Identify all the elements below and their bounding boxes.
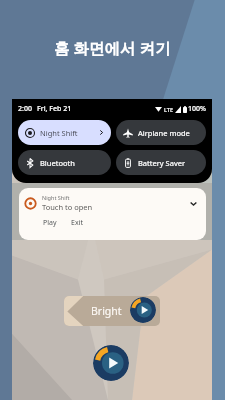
staticText: Play	[43, 218, 57, 228]
button[interactable]: Night Shift	[19, 188, 206, 240]
button[interactable]: Expand	[189, 199, 198, 208]
button[interactable]: Play	[41, 217, 59, 229]
staticText: Exit	[71, 218, 83, 228]
button[interactable]: Play Night Shift	[130, 297, 156, 323]
staticText: 2:00	[18, 104, 32, 114]
button[interactable]: Exit	[69, 217, 85, 229]
button[interactable]: Bluetooth	[18, 150, 111, 175]
button[interactable]: Night Shift	[18, 120, 111, 145]
staticText: Bright	[91, 304, 122, 318]
staticText: Bluetooth	[40, 158, 75, 168]
staticText: Touch to open	[42, 202, 93, 212]
button[interactable]: Airplane mode	[116, 120, 206, 145]
staticText: 100%	[188, 104, 206, 114]
staticText: Airplane mode	[138, 128, 190, 138]
staticText: Fri, Feb 21	[37, 104, 72, 114]
button[interactable]: Bright	[64, 296, 160, 326]
staticText: Battery Saver	[138, 158, 186, 168]
staticText: LTE	[164, 106, 173, 113]
staticText: 홈 화면에서 켜기	[54, 37, 171, 58]
button[interactable]: Battery Saver	[116, 150, 206, 175]
button[interactable]: Play Night Shift	[93, 345, 129, 381]
staticText: Night Shift	[40, 128, 78, 138]
staticText: Night Shift	[42, 194, 70, 201]
